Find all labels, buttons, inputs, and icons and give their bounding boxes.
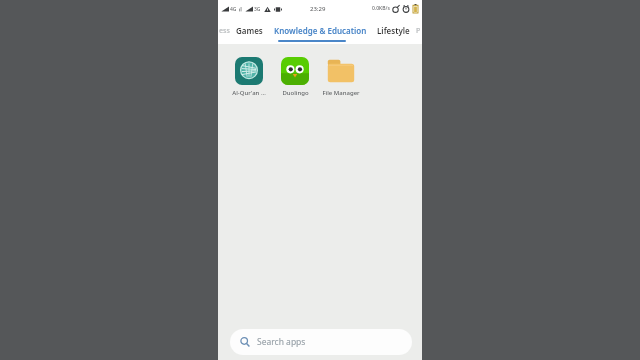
button[interactable]: Lifestyle xyxy=(372,17,415,44)
staticText: ess xyxy=(219,26,230,36)
button[interactable]: Games xyxy=(230,17,269,44)
staticText: Games xyxy=(236,25,263,36)
button[interactable]: Duolingo xyxy=(272,56,318,98)
staticText: File Manager xyxy=(322,89,360,97)
staticText: 0.0KB/s xyxy=(372,5,390,12)
staticText: 23:29 xyxy=(310,5,326,13)
staticText: 4G xyxy=(230,6,237,13)
staticText: Search apps xyxy=(257,336,306,348)
button[interactable]: File Manager xyxy=(318,56,364,98)
button[interactable]: ess xyxy=(218,17,230,44)
button[interactable]: Al-Qur'an … xyxy=(226,56,272,98)
staticText: P xyxy=(416,26,421,36)
button[interactable]: Knowledge & Education xyxy=(269,17,372,44)
staticText: Knowledge & Education xyxy=(274,25,367,36)
staticText: Duolingo xyxy=(282,89,309,97)
button[interactable]: P xyxy=(415,17,422,44)
button[interactable]: Search apps xyxy=(230,329,412,355)
staticText: 3G xyxy=(254,6,261,13)
staticText: Lifestyle xyxy=(377,25,410,36)
staticText: Al-Qur'an … xyxy=(232,89,266,97)
